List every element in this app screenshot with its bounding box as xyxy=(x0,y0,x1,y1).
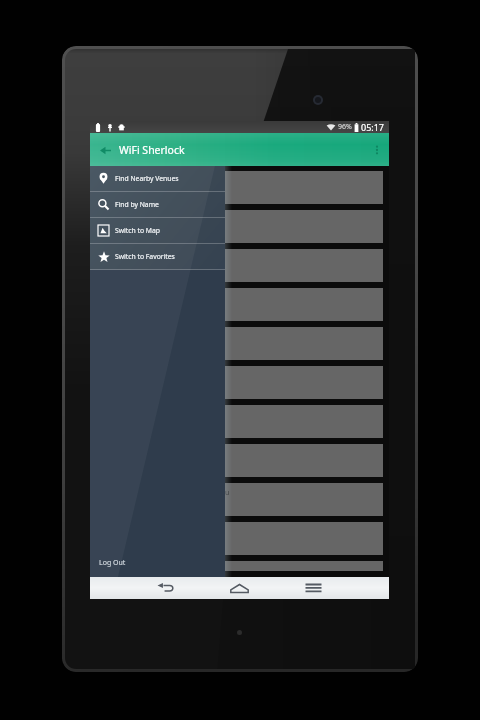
button[interactable] xyxy=(90,249,383,282)
button[interactable]: Switch to Favorites xyxy=(90,244,225,269)
button[interactable]: Log Out xyxy=(90,558,126,577)
staticText: Switch to Map xyxy=(115,226,161,235)
button[interactable]: Recents xyxy=(299,577,327,599)
staticText: u xyxy=(225,488,230,498)
button[interactable]: Find by Name xyxy=(90,192,225,217)
staticText: WiFi Sherlock xyxy=(119,143,185,157)
staticText: Switch to Favorites xyxy=(115,252,175,261)
button[interactable] xyxy=(90,327,383,360)
staticText: 96% xyxy=(338,122,352,132)
button[interactable] xyxy=(90,171,383,204)
button[interactable] xyxy=(90,210,383,243)
button[interactable]: Switch to Map xyxy=(90,218,225,243)
button[interactable] xyxy=(90,483,383,516)
button[interactable]: Back xyxy=(152,577,180,599)
button[interactable]: Home xyxy=(225,577,253,599)
staticText: Find by Name xyxy=(115,200,159,209)
button[interactable] xyxy=(90,405,383,438)
button[interactable] xyxy=(90,561,383,571)
button[interactable]: Find Nearby Venues xyxy=(90,166,225,191)
button[interactable]: More options xyxy=(367,140,387,160)
button[interactable]: Back xyxy=(95,140,115,160)
button[interactable] xyxy=(90,444,383,477)
button[interactable] xyxy=(90,522,383,555)
staticText: 05:17 xyxy=(361,121,385,133)
button[interactable] xyxy=(90,366,383,399)
staticText: Find Nearby Venues xyxy=(115,174,179,183)
button[interactable] xyxy=(90,288,383,321)
